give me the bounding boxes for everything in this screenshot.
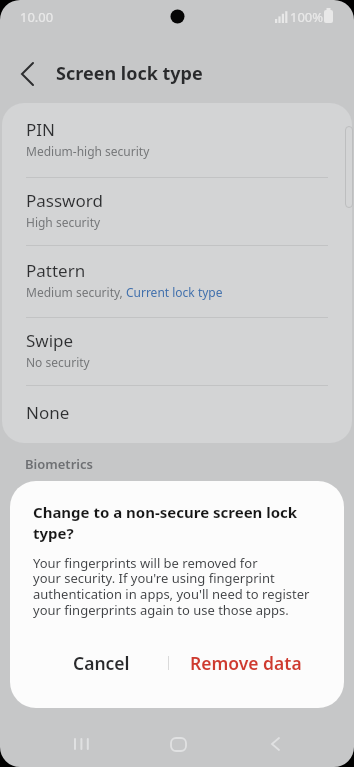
button[interactable] bbox=[10, 57, 44, 91]
staticText: Pattern bbox=[26, 259, 86, 282]
staticText: No security bbox=[26, 354, 90, 370]
button[interactable]: Remove data bbox=[186, 645, 306, 681]
button[interactable] bbox=[258, 731, 292, 757]
staticText: 100% bbox=[290, 8, 324, 26]
staticText: PIN bbox=[26, 118, 55, 141]
button[interactable]: None bbox=[2, 386, 352, 443]
button[interactable]: Swipe bbox=[2, 318, 352, 385]
staticText: Your fingerprints will be removed for yo… bbox=[33, 554, 310, 619]
staticText: Cancel bbox=[73, 651, 130, 675]
button[interactable]: Pattern bbox=[2, 246, 352, 317]
button[interactable]: PIN bbox=[2, 103, 352, 177]
button[interactable]: Cancel bbox=[41, 645, 161, 681]
staticText: Change to a non-secure screen lock type? bbox=[33, 502, 298, 544]
staticText: High security bbox=[26, 214, 101, 230]
staticText: 10.00 bbox=[20, 8, 54, 26]
staticText: Biometrics bbox=[25, 455, 93, 473]
staticText: Screen lock type bbox=[56, 61, 203, 86]
staticText: Medium-high security bbox=[26, 143, 150, 159]
staticText: Medium security, Current lock type bbox=[26, 284, 223, 300]
staticText: Password bbox=[26, 189, 103, 212]
staticText: Remove data bbox=[190, 651, 302, 675]
button[interactable] bbox=[62, 731, 96, 757]
button[interactable]: Password bbox=[2, 178, 352, 245]
button[interactable] bbox=[161, 731, 195, 757]
staticText: Swipe bbox=[26, 329, 74, 352]
staticText: None bbox=[26, 401, 70, 424]
